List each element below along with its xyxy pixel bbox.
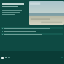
button[interactable] [1,30,63,32]
button[interactable] [1,27,63,29]
button[interactable] [0,0,29,26]
button[interactable] [1,33,63,35]
button[interactable]: Play [1,57,4,59]
button[interactable]: Open photo [29,1,64,25]
